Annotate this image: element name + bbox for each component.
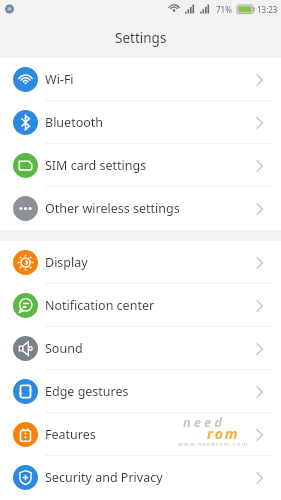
- staticText: Wi-Fi: [45, 71, 74, 88]
- button[interactable]: Wi-Fi: [0, 58, 281, 101]
- staticText: Other wireless settings: [45, 200, 180, 217]
- button[interactable]: Other wireless settings: [0, 187, 281, 230]
- staticText: need: [183, 413, 226, 431]
- staticText: Notification center: [45, 297, 155, 314]
- button[interactable]: Bluetooth: [0, 101, 281, 144]
- button[interactable]: Display: [0, 241, 281, 284]
- button[interactable]: Security and Privacy: [0, 456, 281, 499]
- staticText: SIM card settings: [45, 157, 147, 174]
- staticText: rom: [207, 424, 240, 443]
- staticText: Bluetooth: [45, 114, 104, 131]
- staticText: Display: [45, 254, 88, 271]
- staticText: Settings: [115, 29, 167, 47]
- button[interactable]: SIM card settings: [0, 144, 281, 187]
- button[interactable]: Notification center: [0, 284, 281, 327]
- staticText: Edge gestures: [45, 383, 129, 400]
- staticText: www.needrom.com: [178, 440, 249, 448]
- staticText: Sound: [45, 340, 83, 357]
- staticText: 13:23: [257, 4, 278, 15]
- staticText: Security and Privacy: [45, 469, 163, 486]
- button[interactable]: Features: [0, 413, 281, 456]
- button[interactable]: Edge gestures: [0, 370, 281, 413]
- button[interactable]: Sound: [0, 327, 281, 370]
- staticText: 71%: [216, 4, 232, 15]
- staticText: Features: [45, 426, 96, 443]
